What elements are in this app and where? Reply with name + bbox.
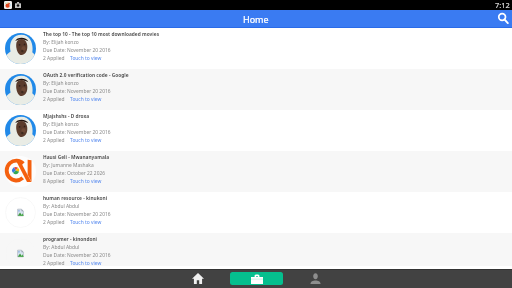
staticText: 2 Applied [43, 137, 65, 144]
staticText: By: Abdul Abdul [43, 244, 80, 251]
staticText: 2 Applied [43, 260, 65, 267]
button[interactable]: Home [171, 269, 224, 288]
staticText: 7:12 [495, 0, 510, 10]
staticText: By: Jumanne Mashaka [43, 162, 94, 169]
staticText: Due Date: November 20 2016 [43, 211, 111, 218]
staticText: 8 Applied [43, 178, 65, 185]
button[interactable]: Mjajshshs - D droxa [0, 110, 512, 151]
button[interactable]: Search [492, 10, 512, 28]
button[interactable]: Touch to view [70, 55, 102, 62]
button[interactable]: Touch to view [70, 219, 102, 226]
staticText: Due Date: November 20 2016 [43, 88, 111, 95]
button[interactable]: Touch to view [70, 96, 102, 103]
staticText: Due Date: November 20 2016 [43, 47, 111, 54]
button[interactable]: Profile [289, 269, 342, 288]
button[interactable]: Hausi Geli - Mwananyamala [0, 151, 512, 192]
button[interactable]: Touch to view [70, 137, 102, 144]
staticText: By: Elijah konzo [43, 121, 79, 128]
staticText: human resource - kinukoni [43, 195, 108, 202]
staticText: Hausi Geli - Mwananyamala [43, 154, 110, 161]
button[interactable]: Touch to view [70, 260, 102, 267]
button[interactable]: The top 10 - The top 10 most downloaded … [0, 28, 512, 69]
staticText: By: Elijah konzo [43, 39, 79, 46]
staticText: Mjajshshs - D droxa [43, 113, 90, 120]
staticText: Due Date: November 20 2016 [43, 129, 111, 136]
staticText: By: Elijah konzo [43, 80, 79, 87]
staticText: programer - kinondoni [43, 236, 97, 243]
button[interactable]: Touch to view [70, 178, 102, 185]
staticText: 2 Applied [43, 219, 65, 226]
staticText: The top 10 - The top 10 most downloaded … [43, 31, 160, 38]
button[interactable]: programer - kinondoni [0, 233, 512, 274]
staticText: OAuth 2.0 verification code - Google [43, 72, 129, 79]
button[interactable]: Jobs [230, 269, 283, 288]
button[interactable]: OAuth 2.0 verification code - Google [0, 69, 512, 110]
staticText: 2 Applied [43, 55, 65, 62]
button[interactable]: human resource - kinukoni [0, 192, 512, 233]
staticText: Due Date: October 22 2026 [43, 170, 106, 177]
staticText: Home [243, 13, 269, 25]
staticText: Due Date: November 20 2016 [43, 252, 111, 259]
staticText: By: Abdul Abdul [43, 203, 80, 210]
staticText: 2 Applied [43, 96, 65, 103]
